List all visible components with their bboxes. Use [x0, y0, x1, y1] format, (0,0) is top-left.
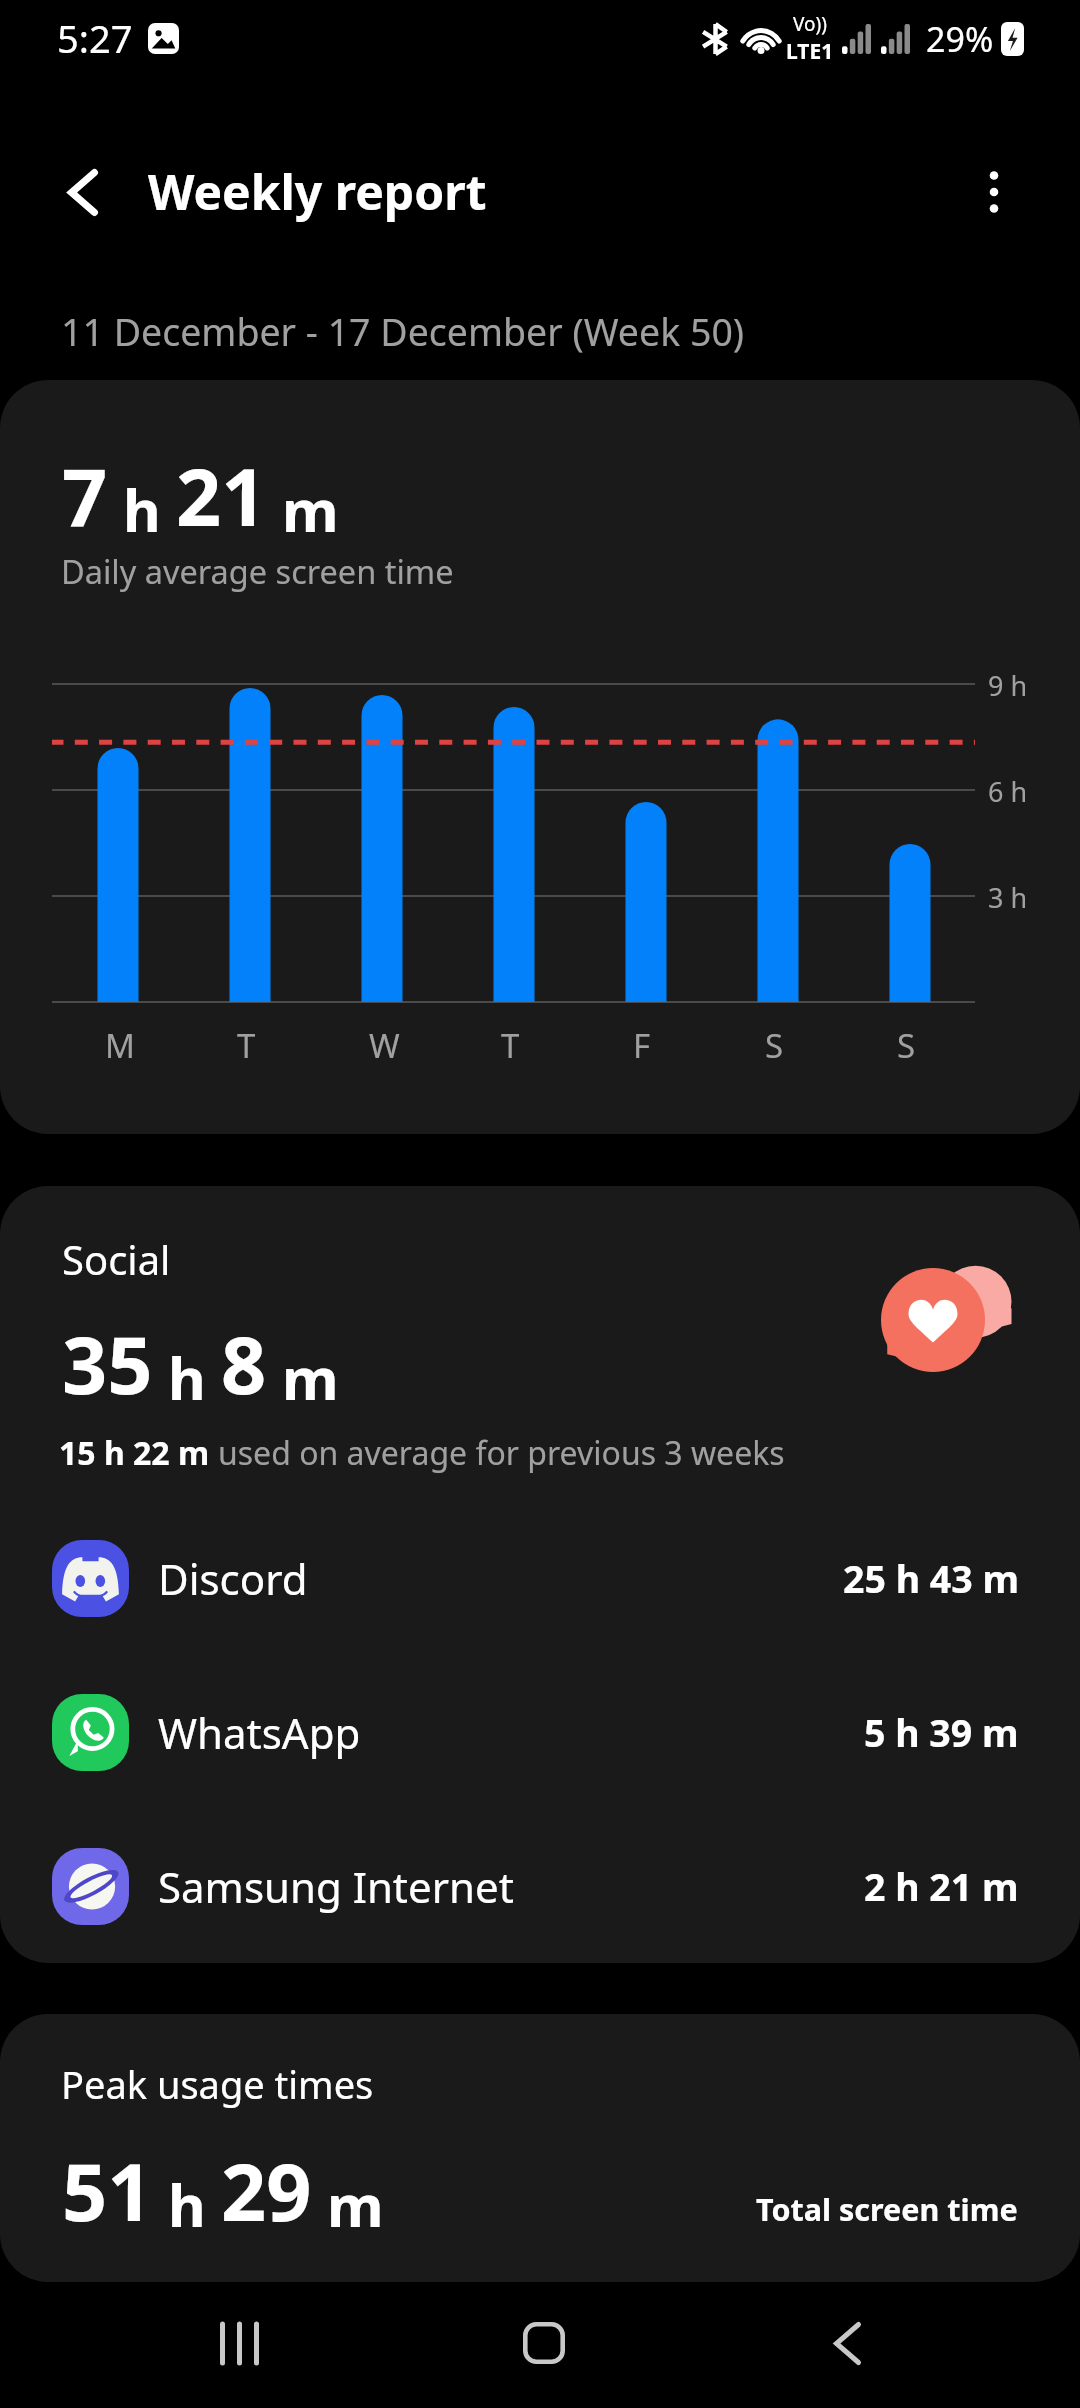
staticText: Weekly report: [148, 159, 487, 224]
staticText: 7: [62, 442, 108, 550]
staticText: T: [501, 1023, 520, 1068]
staticText: 35: [62, 1310, 153, 1418]
staticText: S: [765, 1023, 784, 1068]
button[interactable]: Recents: [186, 2299, 294, 2387]
staticText: 29: [221, 2137, 312, 2245]
button[interactable]: WhatsApp: [0, 1684, 1080, 1780]
button[interactable]: Social: [0, 1186, 1080, 1486]
button[interactable]: 7: [0, 380, 1080, 1134]
button[interactable]: Back: [39, 144, 127, 240]
staticText: Vo)): [793, 11, 827, 37]
staticText: Samsung Internet: [158, 1858, 514, 1915]
staticText: 6 h: [988, 773, 1028, 810]
button[interactable]: Back: [793, 2299, 901, 2387]
staticText: h: [153, 2165, 221, 2244]
staticText: 9 h: [988, 667, 1028, 704]
staticText: 5 h 39 m: [864, 1707, 1019, 1758]
staticText: 25 h 43 m: [843, 1553, 1019, 1604]
button[interactable]: Home: [490, 2299, 598, 2387]
staticText: m: [312, 2165, 384, 2244]
staticText: LTE1: [786, 37, 834, 66]
staticText: W: [369, 1023, 400, 1068]
staticText: Total screen time: [756, 2188, 1018, 2230]
button[interactable]: Samsung Internet: [0, 1838, 1080, 1934]
staticText: 3 h: [988, 879, 1028, 916]
staticText: Social: [62, 1232, 171, 1286]
staticText: 8: [221, 1310, 267, 1418]
staticText: T: [237, 1023, 256, 1068]
staticText: h: [108, 470, 176, 549]
staticText: 5:27: [57, 12, 133, 64]
staticText: m: [267, 1338, 339, 1417]
staticText: 29%: [926, 16, 994, 62]
staticText: 2 h 21 m: [864, 1861, 1019, 1912]
staticText: 11 December - 17 December (Week 50): [61, 306, 745, 357]
button[interactable]: More options: [950, 144, 1038, 240]
staticText: h: [153, 1338, 221, 1417]
staticText: 51: [62, 2137, 153, 2245]
button[interactable]: Peak usage times: [0, 2014, 1080, 2282]
staticText: WhatsApp: [158, 1704, 361, 1761]
staticText: F: [633, 1023, 651, 1068]
staticText: M: [105, 1023, 135, 1068]
button[interactable]: Discord: [0, 1530, 1080, 1626]
staticText: Discord: [158, 1550, 308, 1607]
staticText: S: [897, 1023, 916, 1068]
staticText: used on average for previous 3 weeks: [218, 1431, 785, 1475]
staticText: 21: [176, 442, 267, 550]
staticText: Daily average screen time: [61, 549, 454, 593]
staticText: Peak usage times: [61, 2058, 374, 2110]
staticText: 15 h 22 m: [59, 1431, 218, 1475]
staticText: m: [267, 470, 339, 549]
